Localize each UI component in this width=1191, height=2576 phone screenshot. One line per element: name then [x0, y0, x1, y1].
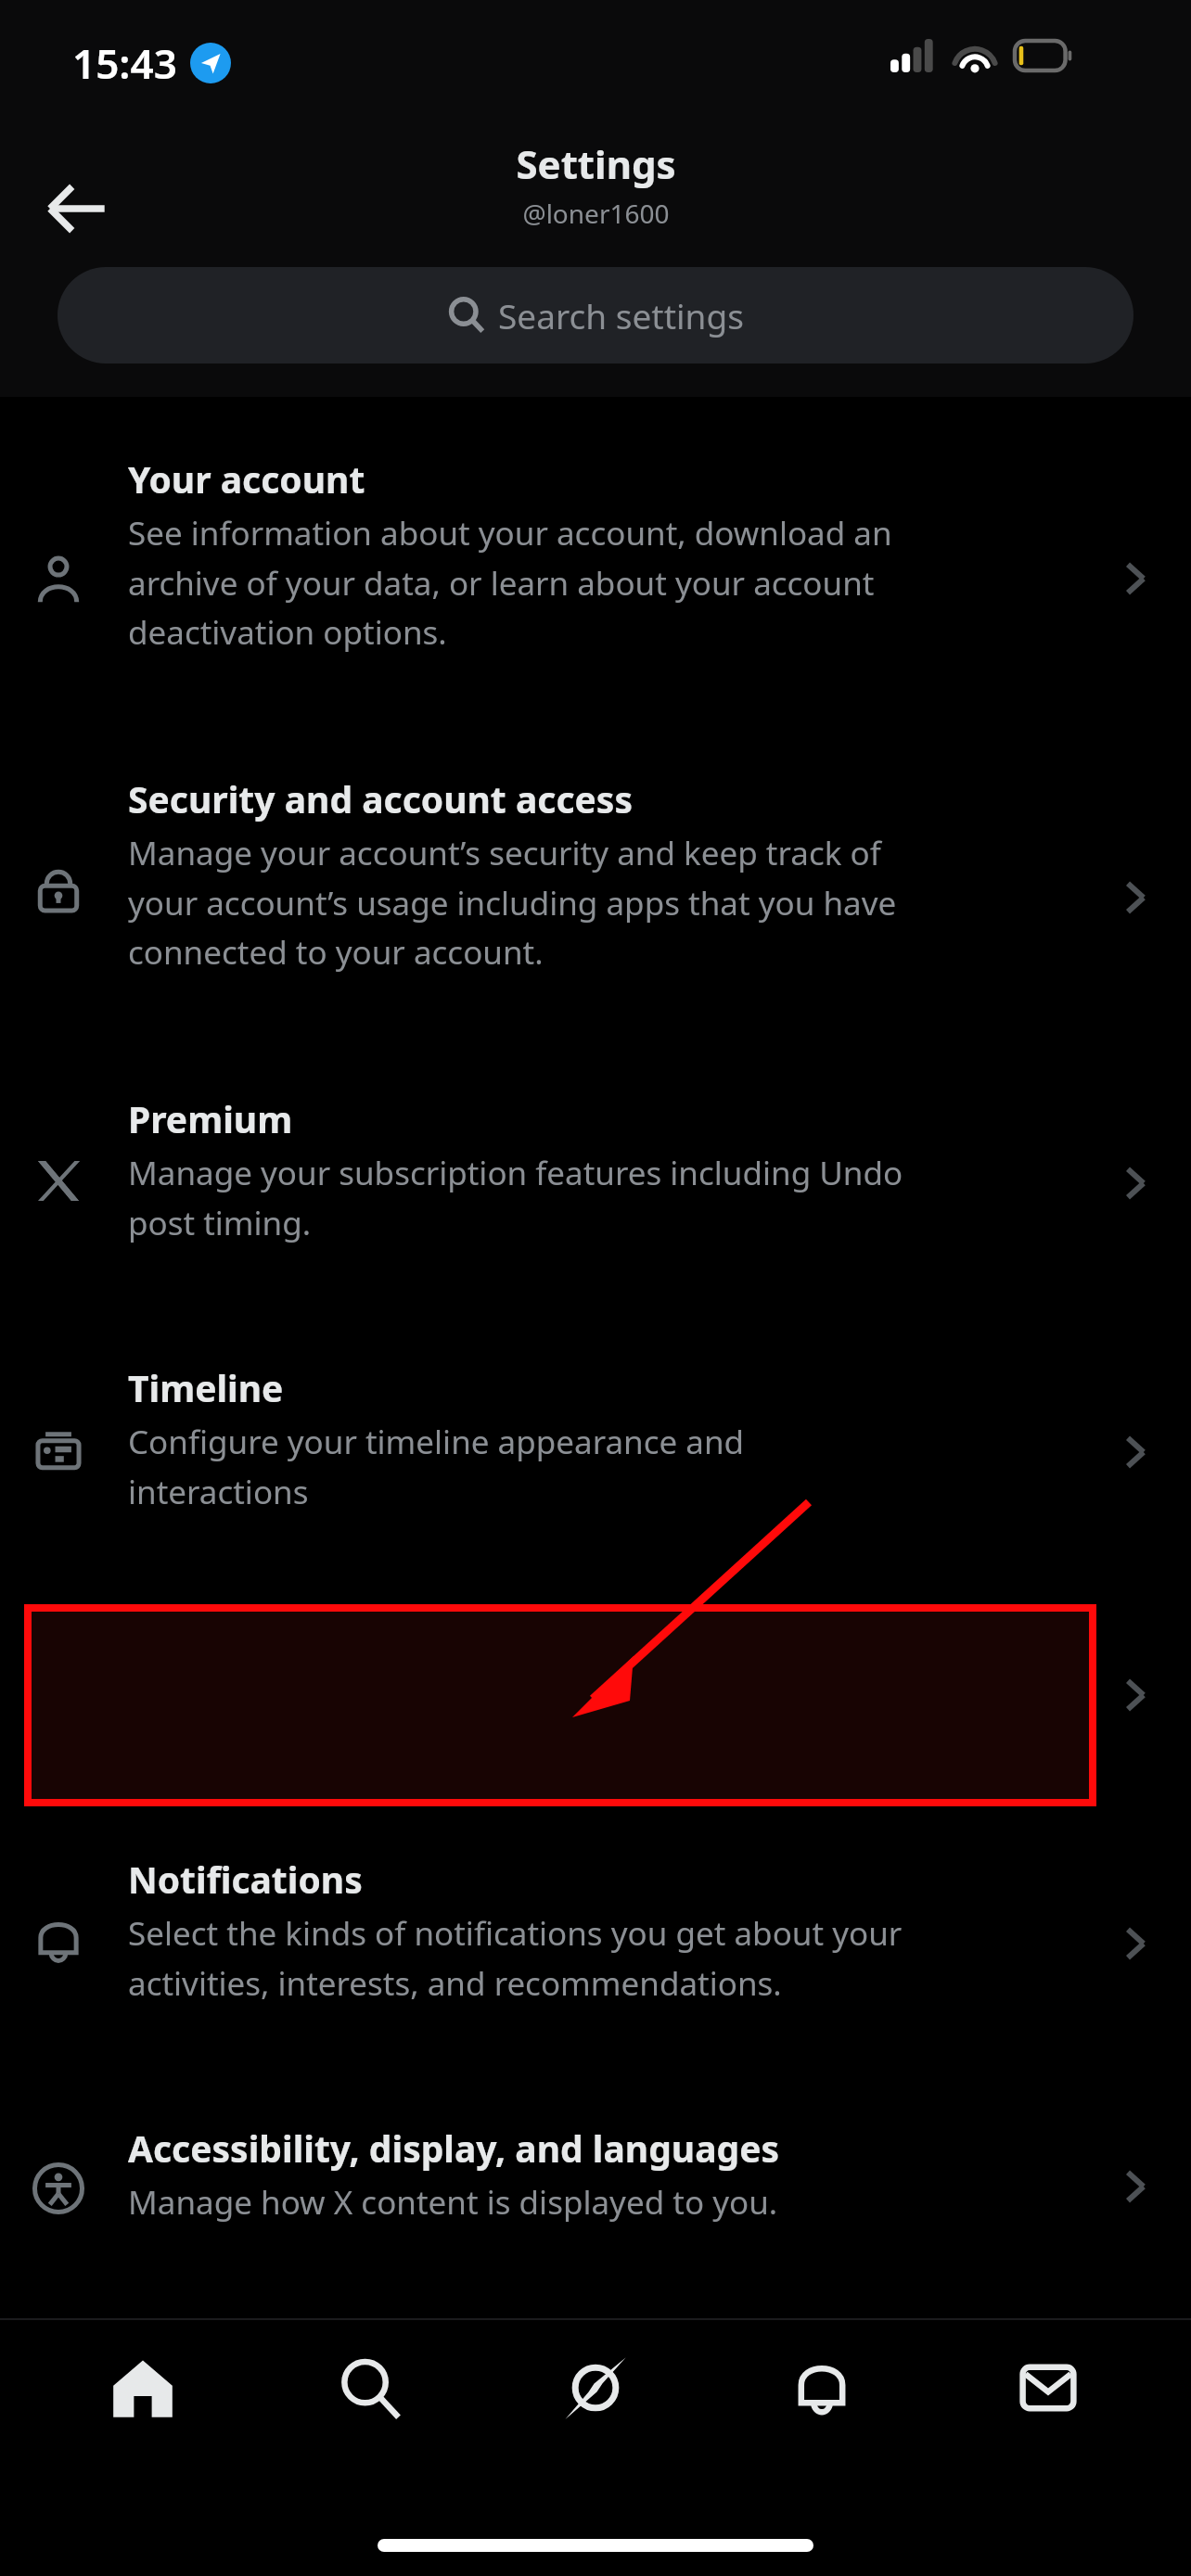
- staticText: See information about your account, down…: [128, 511, 892, 654]
- staticText: Accessibility, display, and languages: [128, 2123, 780, 2173]
- staticText: Premium: [128, 1094, 293, 1143]
- button[interactable]: Grok: [512, 2353, 679, 2465]
- staticText: Settings: [516, 137, 676, 190]
- button[interactable]: Privacy and safety: [0, 1621, 1191, 1735]
- staticText: Your account: [128, 454, 365, 504]
- staticText: @loner1600: [522, 196, 670, 231]
- button[interactable]: Timeline: [0, 1352, 1191, 1515]
- button[interactable]: Notifications: [738, 2353, 905, 2465]
- staticText: Notifications: [128, 1855, 363, 1904]
- button[interactable]: Your account: [0, 443, 1191, 656]
- staticText: 15:43: [72, 35, 177, 91]
- button[interactable]: Notifications: [0, 1843, 1191, 2007]
- button[interactable]: Back: [17, 148, 137, 269]
- staticText: Manage what information you see and shar…: [128, 1689, 896, 1733]
- staticText: Configure your timeline appearance and i…: [128, 1420, 745, 1513]
- staticText: Search settings: [498, 292, 744, 338]
- button[interactable]: Search settings: [58, 267, 1133, 363]
- button[interactable]: Home: [59, 2353, 226, 2465]
- staticText: Select the kinds of notifications you ge…: [128, 1911, 903, 2005]
- staticText: Manage how X content is displayed to you…: [128, 2180, 778, 2225]
- button[interactable]: Messages: [965, 2353, 1132, 2465]
- staticText: Manage your account’s security and keep …: [128, 831, 897, 974]
- button[interactable]: Search: [286, 2353, 453, 2465]
- button[interactable]: Accessibility, display, and languages: [0, 2112, 1191, 2226]
- button[interactable]: Premium: [0, 1083, 1191, 1246]
- staticText: Manage your subscription features includ…: [128, 1151, 903, 1244]
- staticText: Timeline: [128, 1363, 284, 1412]
- button[interactable]: Security and account access: [0, 763, 1191, 976]
- staticText: Security and account access: [128, 774, 633, 823]
